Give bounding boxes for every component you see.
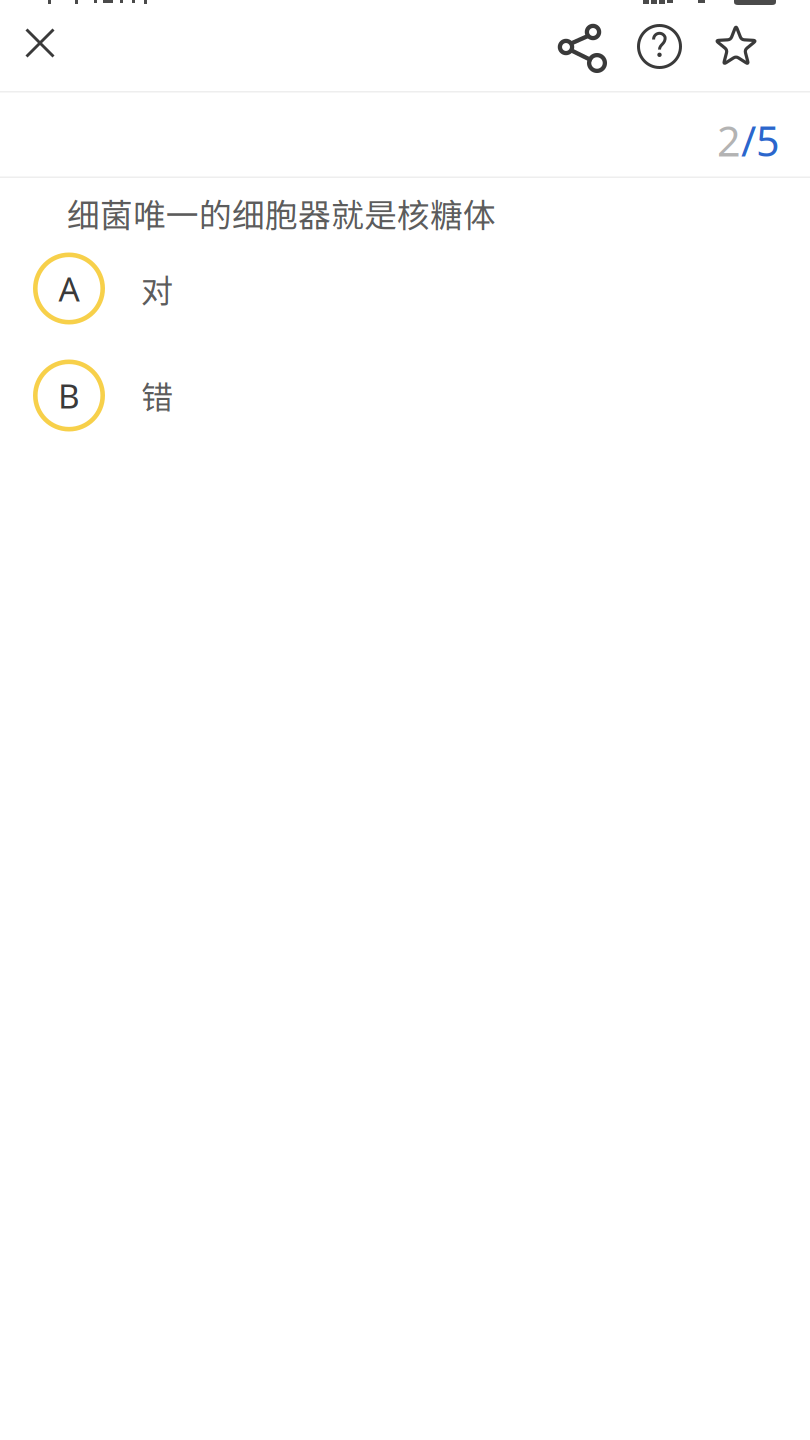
button[interactable]: Help	[637, 4, 682, 89]
staticText: A	[58, 266, 79, 311]
button[interactable]: Share	[558, 4, 607, 89]
staticText: 对	[141, 265, 173, 312]
button[interactable]: Favorite	[715, 4, 757, 89]
button[interactable]: Close	[0, 4, 80, 89]
button[interactable]: A	[0, 235, 810, 342]
staticText: 错	[141, 372, 173, 419]
staticText: B	[58, 373, 80, 418]
staticText: 细菌唯一的细胞器就是核糖体	[67, 189, 496, 237]
staticText: /5	[741, 113, 780, 168]
staticText: 2	[717, 113, 741, 168]
button[interactable]: B	[0, 342, 810, 449]
